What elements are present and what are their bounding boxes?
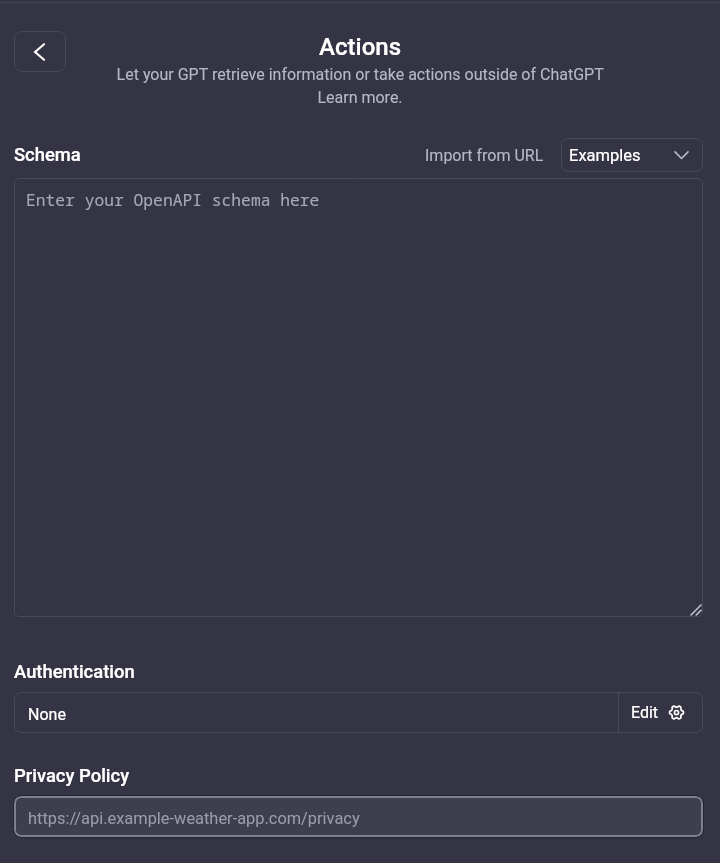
staticText: Privacy Policy xyxy=(14,765,130,787)
staticText: Actions xyxy=(0,33,720,61)
button[interactable]: https://api.example-weather-app.com/priv… xyxy=(14,796,703,837)
button[interactable]: Back xyxy=(14,31,66,72)
staticText: Edit xyxy=(631,703,659,722)
staticText: Enter your OpenAPI schema here xyxy=(26,189,320,211)
button[interactable]: Enter your OpenAPI schema here xyxy=(14,178,703,617)
button[interactable]: Import from URL xyxy=(421,138,548,172)
staticText: https://api.example-weather-app.com/priv… xyxy=(28,809,360,828)
staticText: Schema xyxy=(14,144,81,166)
button[interactable]: None xyxy=(14,692,618,733)
staticText: Authentication xyxy=(14,661,135,683)
button[interactable]: Examples xyxy=(561,138,703,172)
staticText: None xyxy=(28,705,66,724)
staticText: Import from URL xyxy=(425,146,544,165)
staticText: Let your GPT retrieve information or tak… xyxy=(108,65,612,107)
staticText: Examples xyxy=(569,146,641,165)
button[interactable]: Edit xyxy=(619,692,695,733)
